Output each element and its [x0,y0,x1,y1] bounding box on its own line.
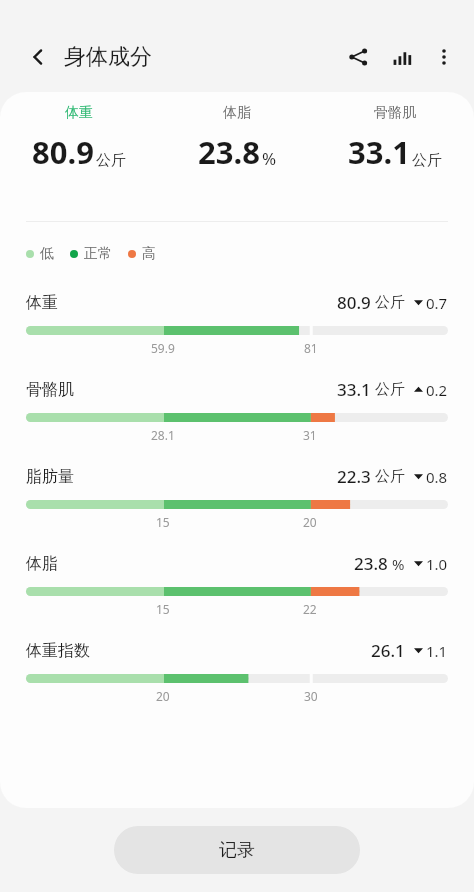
button[interactable]: 脂肪量 [0,465,474,530]
staticText: 31 [303,427,317,443]
staticText: 22 [303,601,317,617]
staticText: 低 [40,245,54,263]
button[interactable]: More options [424,37,464,77]
staticText: 30 [304,688,318,704]
staticText: 33.1 [337,378,371,401]
staticText: 脂肪量 [26,467,74,487]
button[interactable]: Back [18,37,58,77]
staticText: 22.3 [337,465,371,488]
button[interactable]: Chart [380,35,424,79]
staticText: 1.1 [426,641,448,661]
button[interactable]: 体重 [0,291,474,356]
staticText: 26.1 [371,639,405,662]
staticText: 28.1 [151,427,175,443]
button[interactable]: 体重指数 [0,639,474,704]
staticText: 1.0 [426,554,448,574]
staticText: 体脂 [26,554,58,574]
staticText: 15 [156,514,170,530]
staticText: 骨骼肌 [374,104,416,122]
staticText: 23.8 [198,131,260,173]
staticText: % [392,554,405,574]
staticText: 0.7 [426,293,448,313]
staticText: 公斤 [412,151,442,170]
staticText: 0.2 [426,380,448,400]
staticText: 记录 [219,839,255,862]
staticText: 15 [156,601,170,617]
staticText: 公斤 [375,293,405,312]
button[interactable]: 骨骼肌 [316,102,474,175]
staticText: 20 [303,514,317,530]
staticText: 0.8 [426,467,448,487]
staticText: 23.8 [354,552,388,575]
staticText: % [262,147,277,170]
staticText: 20 [156,688,170,704]
staticText: 公斤 [375,467,405,486]
staticText: 体重 [65,104,93,122]
button[interactable]: 骨骼肌 [0,378,474,443]
button[interactable]: 体脂 [158,102,316,175]
button[interactable]: 体脂 [0,552,474,617]
staticText: 身体成分 [64,43,152,71]
staticText: 公斤 [96,151,126,170]
button[interactable]: 记录 [114,826,360,874]
staticText: 公斤 [375,380,405,399]
button[interactable]: Share [336,35,380,79]
staticText: 80.9 [32,131,94,173]
staticText: 体重 [26,293,58,313]
staticText: 骨骼肌 [26,380,74,400]
button[interactable]: 体重 [0,102,158,175]
staticText: 正常 [84,245,112,263]
staticText: 体重指数 [26,641,90,661]
staticText: 33.1 [348,131,410,173]
staticText: 59.9 [151,340,175,356]
staticText: 高 [142,245,156,263]
staticText: 80.9 [337,291,371,314]
staticText: 体脂 [223,104,251,122]
staticText: 81 [304,340,318,356]
